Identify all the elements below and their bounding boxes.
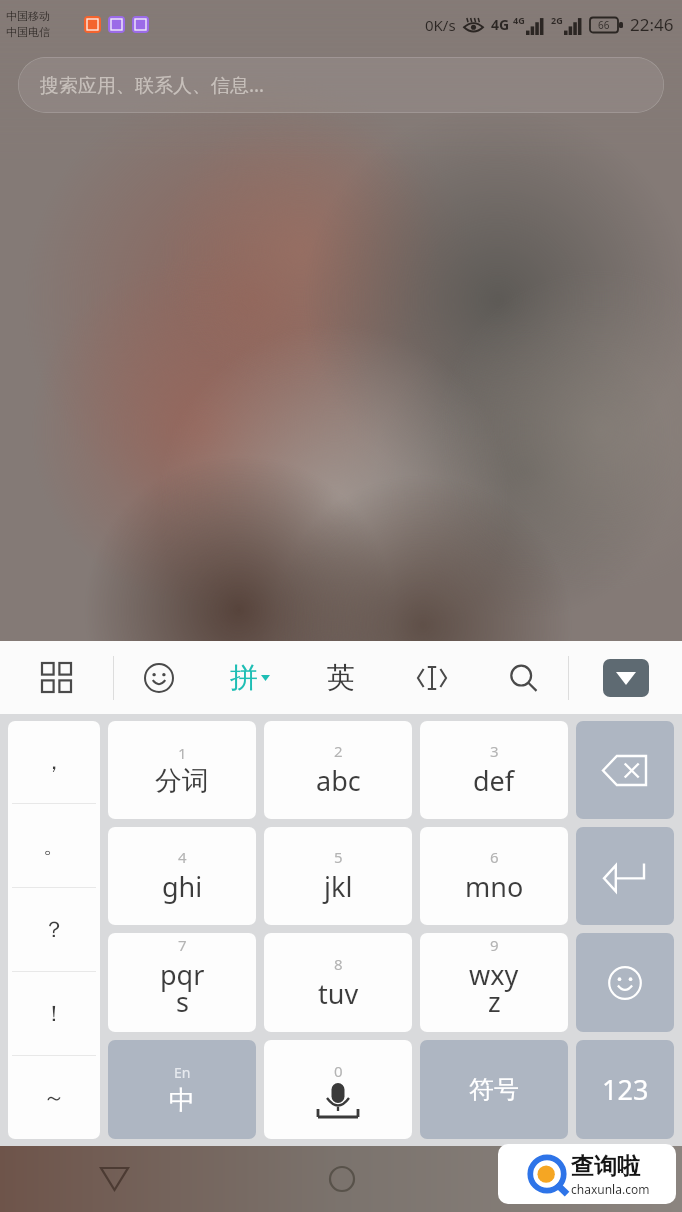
staticText: 中国移动: [6, 9, 50, 23]
staticText: z: [488, 983, 501, 1020]
button[interactable]: 123: [576, 1040, 674, 1139]
staticText: def: [473, 762, 515, 799]
staticText: 中国电信: [6, 25, 50, 39]
staticText: ghi: [162, 868, 203, 905]
staticText: ？: [43, 916, 65, 944]
button[interactable]: 7: [108, 933, 256, 1032]
staticText: 66: [598, 18, 610, 32]
staticText: 6: [490, 847, 499, 867]
button[interactable]: Pinyin input: [204, 641, 295, 714]
staticText: 0K/s: [425, 15, 456, 35]
button[interactable]: English input: [295, 641, 386, 714]
button[interactable]: ～: [8, 1056, 100, 1139]
button[interactable]: Space, voice input: [264, 1040, 412, 1139]
button[interactable]: 2: [264, 721, 412, 819]
button[interactable]: Emoji: [576, 933, 674, 1032]
button[interactable]: Home: [228, 1146, 455, 1212]
button[interactable]: Delete: [576, 721, 674, 819]
button[interactable]: ？: [8, 888, 100, 971]
staticText: 查询啦: [571, 1152, 640, 1181]
button[interactable]: 8: [264, 933, 412, 1032]
staticText: 123: [602, 1071, 649, 1108]
staticText: 中: [169, 1084, 195, 1117]
staticText: 4G: [513, 14, 525, 26]
staticText: tuv: [318, 975, 359, 1012]
button[interactable]: 6: [420, 827, 568, 925]
button[interactable]: Back: [0, 1146, 228, 1212]
staticText: pqr: [160, 956, 205, 993]
staticText: 22:46: [630, 13, 674, 36]
staticText: s: [176, 983, 189, 1020]
staticText: ～: [43, 1084, 65, 1112]
button[interactable]: 符号: [420, 1040, 568, 1139]
staticText: wxy: [469, 956, 519, 993]
button[interactable]: 3: [420, 721, 568, 819]
button[interactable]: ！: [8, 972, 100, 1055]
staticText: jkl: [324, 868, 353, 905]
staticText: 7: [178, 935, 187, 955]
staticText: mno: [465, 868, 524, 905]
button[interactable]: 搜索应用、联系人、信息…: [18, 57, 664, 113]
staticText: ！: [43, 1000, 65, 1028]
button[interactable]: Enter: [576, 827, 674, 925]
staticText: chaxunla.com: [571, 1181, 650, 1197]
staticText: 4: [178, 847, 187, 867]
button[interactable]: En: [108, 1040, 256, 1139]
staticText: En: [174, 1063, 191, 1082]
staticText: 9: [490, 935, 499, 955]
staticText: 英: [327, 660, 355, 695]
staticText: ，: [43, 748, 65, 776]
staticText: 搜索应用、联系人、信息…: [40, 72, 265, 98]
staticText: 符号: [469, 1074, 519, 1105]
button[interactable]: ，: [8, 721, 100, 803]
staticText: 分词: [155, 764, 209, 798]
staticText: 拼: [230, 660, 258, 695]
staticText: abc: [316, 762, 361, 799]
button[interactable]: 。: [8, 804, 100, 887]
staticText: 0: [334, 1061, 343, 1081]
button[interactable]: 1: [108, 721, 256, 819]
button[interactable]: Move cursor: [386, 641, 477, 714]
staticText: 8: [334, 954, 343, 974]
staticText: 2G: [551, 14, 563, 26]
button[interactable]: Hide keyboard: [569, 641, 682, 714]
staticText: 5: [334, 847, 343, 867]
staticText: 。: [43, 832, 65, 860]
staticText: 2: [334, 741, 343, 761]
staticText: 1: [178, 743, 187, 763]
button[interactable]: Search: [477, 641, 568, 714]
staticText: 4G: [491, 15, 510, 34]
button[interactable]: 5: [264, 827, 412, 925]
button[interactable]: Emoji: [114, 641, 204, 714]
button[interactable]: Recent apps: [455, 1146, 682, 1212]
button[interactable]: 4: [108, 827, 256, 925]
button[interactable]: 9: [420, 933, 568, 1032]
staticText: 3: [490, 741, 499, 761]
button[interactable]: Keyboard layouts: [0, 641, 113, 714]
